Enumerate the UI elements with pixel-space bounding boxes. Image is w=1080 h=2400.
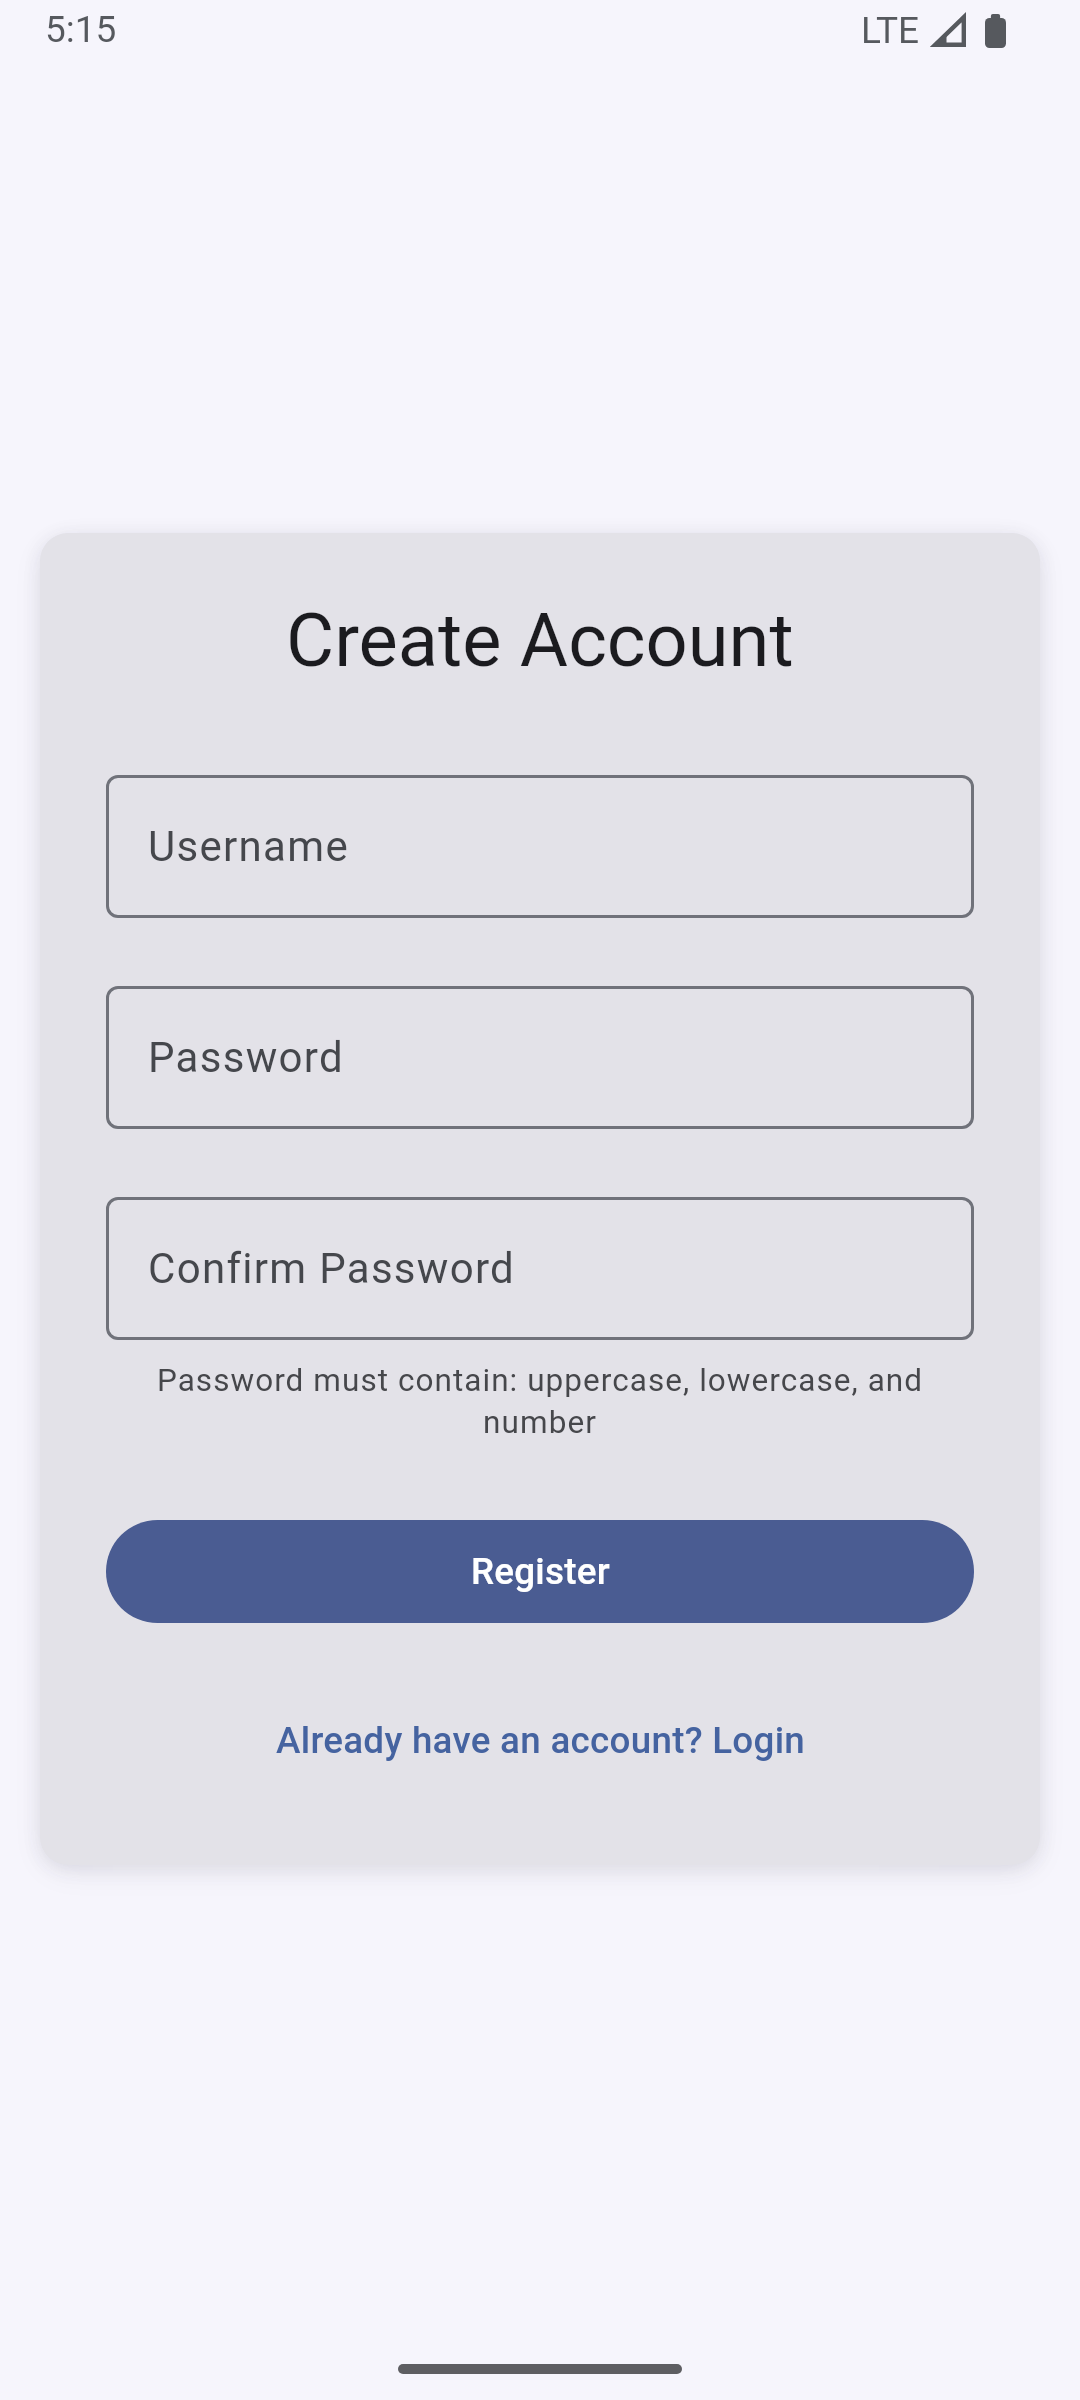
button[interactable]: Username bbox=[106, 775, 974, 918]
button[interactable]: Password bbox=[106, 986, 974, 1129]
button[interactable]: Already have an account? Login bbox=[276, 1719, 805, 1762]
staticText: Create Account bbox=[286, 597, 794, 684]
button[interactable]: Confirm Password bbox=[106, 1197, 974, 1340]
staticText: LTE bbox=[861, 9, 920, 52]
staticText: Already have an account? Login bbox=[276, 1719, 805, 1762]
button[interactable]: Register bbox=[106, 1520, 974, 1623]
staticText: Register bbox=[471, 1550, 610, 1593]
staticText: Password must contain: uppercase, lowerc… bbox=[106, 1362, 974, 1441]
staticText: Confirm Password bbox=[148, 1244, 516, 1293]
staticText: Username bbox=[148, 822, 349, 871]
staticText: 5:15 bbox=[45, 8, 117, 51]
staticText: Password bbox=[148, 1033, 344, 1082]
